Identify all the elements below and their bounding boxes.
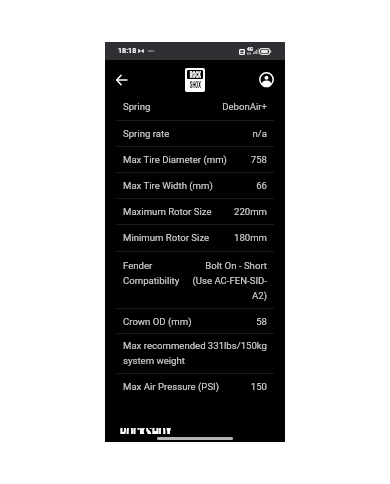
staticText: 220mm <box>123 203 267 218</box>
staticText: SHOX <box>190 80 201 90</box>
staticText: Crown OD (mm) <box>123 313 192 328</box>
staticText: 4G <box>247 47 253 52</box>
button[interactable]: Spring <box>105 93 285 119</box>
staticText: n/a <box>123 125 267 140</box>
staticText: Fender Compatibility <box>123 257 180 287</box>
staticText: Spring rate <box>123 125 170 140</box>
button[interactable]: RockShox <box>185 68 205 92</box>
staticText: Max Air Pressure (PSI) <box>123 378 220 393</box>
button[interactable]: Max Air Pressure (PSI) <box>105 373 285 399</box>
staticText: 180mm <box>123 229 267 244</box>
staticText: 18:18 <box>118 46 137 54</box>
staticText: Minimum Rotor Size <box>123 229 210 244</box>
staticText: Bolt On - Short (Use AC-FEN-SID- A2) <box>123 257 267 301</box>
button[interactable]: Spring rate <box>105 120 285 146</box>
staticText: Maximum Rotor Size <box>123 203 212 218</box>
staticText: 58 <box>123 313 267 328</box>
staticText: ROCK <box>190 70 201 79</box>
staticText: 331lbs/150kg <box>123 337 267 352</box>
staticText: Spring <box>123 98 151 113</box>
staticText: 758 <box>123 151 267 166</box>
button[interactable]: Crown OD (mm) <box>105 308 285 334</box>
button[interactable]: Fender Compatibility <box>105 251 285 308</box>
button[interactable]: Maximum Rotor Size <box>105 198 285 224</box>
staticText: Max Tire Diameter (mm) <box>123 151 227 166</box>
staticText: 66 <box>123 177 267 192</box>
staticText: ROCKSHOX <box>120 428 172 434</box>
button[interactable]: Account <box>255 68 278 91</box>
staticText: 150 <box>123 378 267 393</box>
staticText: Max Tire Width (mm) <box>123 177 213 192</box>
button[interactable]: Minimum Rotor Size <box>105 224 285 250</box>
button[interactable]: Max Tire Width (mm) <box>105 172 285 198</box>
button[interactable]: Max Tire Diameter (mm) <box>105 146 285 172</box>
button[interactable]: Max recommended system weight <box>105 333 285 373</box>
staticText: DebonAir+ <box>123 98 267 113</box>
staticText: Max recommended system weight <box>123 337 206 367</box>
button[interactable]: Back <box>110 68 133 91</box>
